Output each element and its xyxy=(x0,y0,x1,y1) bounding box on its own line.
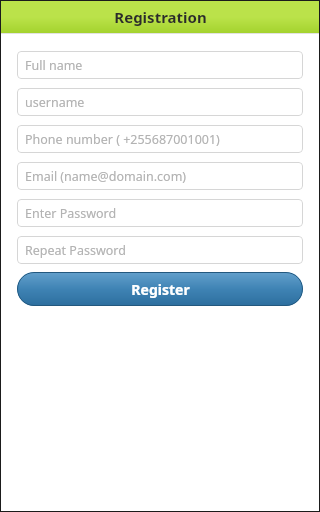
staticText: Registration xyxy=(114,7,207,27)
button[interactable]: Phone number ( +255687001001) xyxy=(17,125,303,153)
staticText: username xyxy=(25,94,85,111)
staticText: Full name xyxy=(25,57,83,74)
button[interactable]: Full name xyxy=(17,51,303,79)
button[interactable]: Enter Password xyxy=(17,199,303,227)
staticText: Email (name@domain.com) xyxy=(25,168,187,185)
staticText: Enter Password xyxy=(25,205,117,222)
button[interactable]: Repeat Password xyxy=(17,236,303,264)
staticText: Phone number ( +255687001001) xyxy=(25,131,220,148)
button[interactable]: Register xyxy=(17,272,303,306)
staticText: Register xyxy=(131,280,190,299)
staticText: Repeat Password xyxy=(25,242,126,259)
button[interactable]: Email (name@domain.com) xyxy=(17,162,303,190)
button[interactable]: username xyxy=(17,88,303,116)
